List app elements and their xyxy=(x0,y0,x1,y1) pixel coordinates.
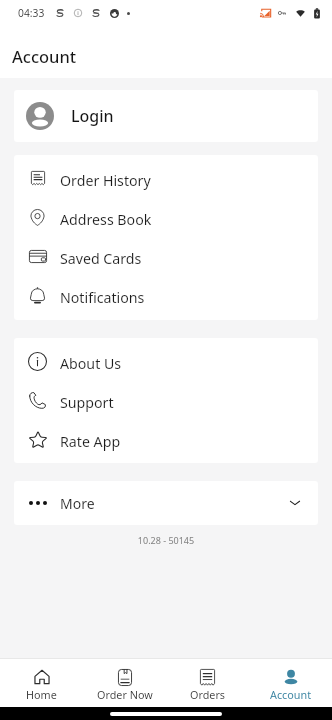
staticText: Account xyxy=(12,45,77,67)
button[interactable]: Notifications xyxy=(14,276,318,315)
button[interactable]: Home xyxy=(0,668,83,702)
staticText: Saved Cards xyxy=(60,249,142,268)
button[interactable]: Address Book xyxy=(14,198,318,237)
staticText: About Us xyxy=(60,354,122,373)
staticText: Order Now xyxy=(97,687,153,702)
staticText: Home xyxy=(26,687,57,702)
button[interactable]: Order Now xyxy=(83,668,166,702)
button[interactable]: Login xyxy=(14,90,318,142)
staticText: 04:33 xyxy=(18,6,45,20)
button[interactable]: Saved Cards xyxy=(14,237,318,276)
button[interactable]: Account xyxy=(249,668,332,702)
button[interactable]: Order History xyxy=(14,159,318,198)
staticText: Orders xyxy=(190,687,226,702)
staticText: Notifications xyxy=(60,288,145,307)
button[interactable]: Orders xyxy=(166,668,249,702)
button[interactable]: Rate App xyxy=(14,420,318,459)
staticText: More xyxy=(60,494,95,513)
staticText: Login xyxy=(71,105,114,127)
button[interactable]: More xyxy=(14,481,318,525)
staticText: Support xyxy=(60,393,114,412)
button[interactable]: About Us xyxy=(14,342,318,381)
staticText: Address Book xyxy=(60,210,152,229)
staticText: 10.28 - 50145 xyxy=(0,534,332,546)
staticText: Rate App xyxy=(60,432,121,451)
staticText: Order History xyxy=(60,171,151,190)
button[interactable]: Support xyxy=(14,381,318,420)
staticText: Account xyxy=(270,687,312,702)
